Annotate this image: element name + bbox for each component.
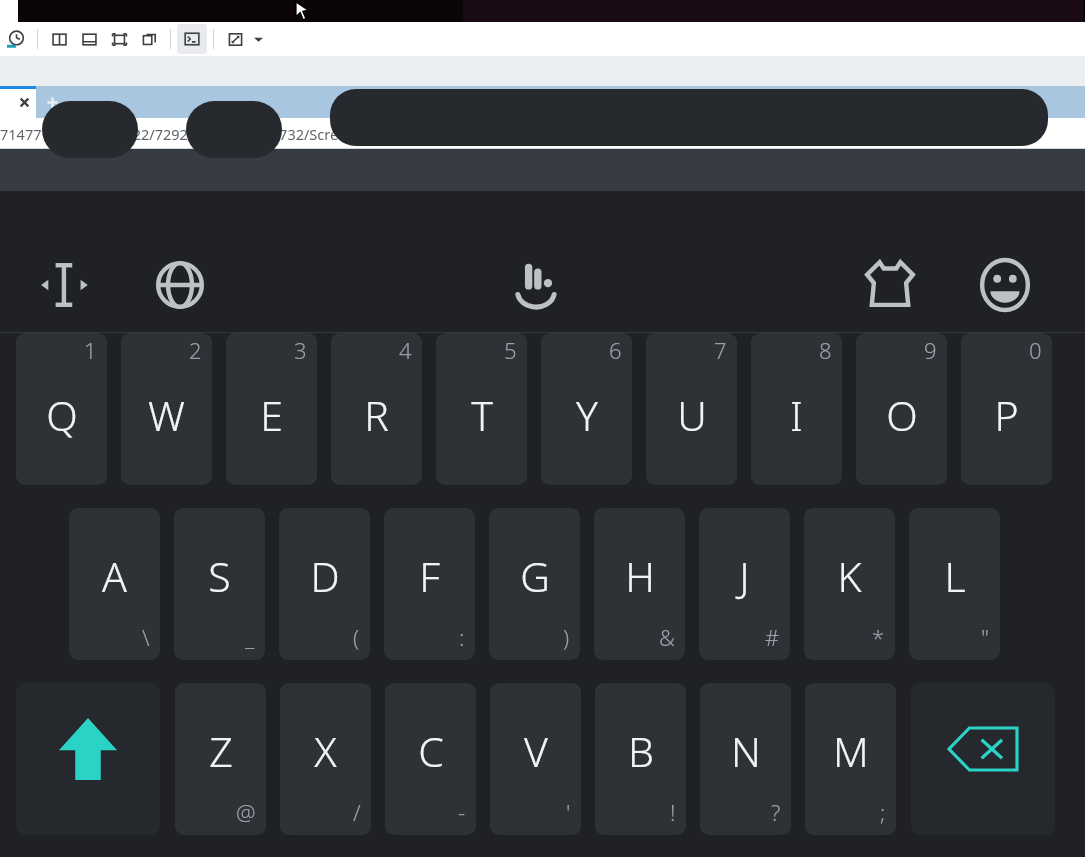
staticText: A [102,548,127,604]
staticText: Z [209,723,233,779]
button[interactable]: Fullscreen [104,24,134,54]
staticText: @ [236,797,256,827]
staticText: V [524,723,548,779]
button[interactable]: Z [175,683,266,835]
staticText: 3 [294,335,307,365]
staticText: 0 [1029,335,1042,365]
button[interactable]: Resize [220,24,250,54]
button[interactable]: N [700,683,791,835]
button[interactable]: Q [16,333,107,485]
button[interactable]: K [804,508,895,660]
button[interactable]: B [595,683,686,835]
staticText: S [208,548,231,604]
staticText: : [459,622,465,652]
button[interactable]: L [909,508,1000,660]
button[interactable]: New tab [38,86,66,118]
staticText: Y [576,387,598,443]
staticText: 1 [84,335,97,365]
button[interactable]: Split view vertical [44,24,74,54]
button[interactable]: Split view horizontal [74,24,104,54]
button[interactable]: History [1,24,31,54]
staticText: ' [566,797,571,827]
staticText: - [458,797,466,827]
staticText: P [994,387,1019,443]
button[interactable]: P [961,333,1052,485]
staticText: ; [880,797,886,827]
staticText: F [419,548,440,604]
staticText: O [886,387,918,443]
staticText: U [677,387,707,443]
button[interactable]: M [805,683,896,835]
button[interactable]: V [490,683,581,835]
staticText: 2 [189,335,202,365]
button[interactable]: R [331,333,422,485]
staticText: W [148,387,185,443]
staticText: L [944,548,966,604]
button[interactable]: A [69,508,160,660]
button[interactable]: H [594,508,685,660]
staticText: _ [245,622,255,652]
button[interactable] [330,89,1048,146]
staticText: E [260,387,283,443]
staticText: ? [771,797,781,827]
button[interactable]: More [250,24,266,54]
button[interactable]: Shift [16,683,160,835]
staticText: " [981,622,990,652]
staticText: Q [46,387,78,443]
button[interactable]: C [385,683,476,835]
button[interactable]: 714771077603131422/729207934516723732/Sc… [0,118,1085,149]
button[interactable]: X [280,683,371,835]
staticText: M [833,723,869,779]
staticText: T [471,387,493,443]
button[interactable]: Theme [860,253,920,313]
staticText: 5 [504,335,517,365]
staticText: 8 [819,335,832,365]
button[interactable]: Gesture typing [506,255,566,315]
staticText: 714771077603131422/729207934516723732/Sc… [0,124,540,144]
button[interactable]: E [226,333,317,485]
staticText: H [625,548,655,604]
button[interactable]: Console [177,24,207,54]
staticText: 7 [714,335,727,365]
button[interactable]: O [856,333,947,485]
staticText: 9 [924,335,937,365]
button[interactable]: T [436,333,527,485]
button[interactable]: D [279,508,370,660]
button[interactable] [186,101,282,158]
staticText: 6 [609,335,622,365]
staticText: * [872,622,885,652]
button[interactable]: Emoji [975,255,1035,315]
staticText: D [310,548,340,604]
button[interactable]: F [384,508,475,660]
staticText: & [659,622,675,652]
staticText: ( [353,622,360,652]
button[interactable]: Windows [134,24,164,54]
button[interactable]: I [751,333,842,485]
staticText: ) [563,622,570,652]
button[interactable]: Cursor control [36,255,96,315]
staticText: X [314,723,337,779]
staticText: I [790,387,803,443]
staticText: J [739,548,750,604]
staticText: # [765,622,780,652]
other: Close tab [19,97,30,108]
button[interactable]: Close tab [0,86,36,118]
staticText: K [837,548,862,604]
staticText: N [731,723,761,779]
button[interactable]: U [646,333,737,485]
button[interactable]: Language [150,255,210,315]
button[interactable]: Y [541,333,632,485]
button[interactable]: Backspace [911,683,1055,835]
button[interactable]: G [489,508,580,660]
staticText: / [353,797,361,827]
button[interactable]: S [174,508,265,660]
staticText: \ [142,622,150,652]
staticText: G [520,548,550,604]
staticText: ! [670,797,676,827]
staticText: R [364,387,389,443]
button[interactable]: W [121,333,212,485]
button[interactable] [42,101,138,158]
staticText: C [418,723,444,779]
staticText: B [628,723,654,779]
button[interactable]: J [699,508,790,660]
